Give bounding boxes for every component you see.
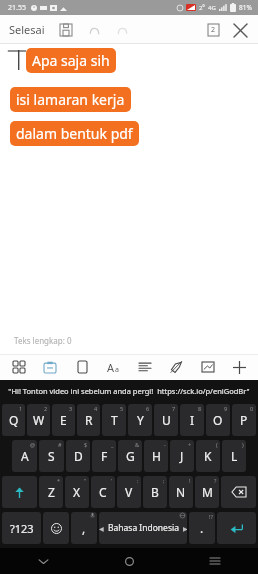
button[interactable] — [2, 476, 37, 508]
staticText: C — [99, 484, 107, 500]
staticText: 2 — [44, 405, 48, 412]
staticText: # — [58, 441, 62, 448]
staticText: & — [135, 441, 140, 448]
button[interactable]: Y — [128, 404, 152, 436]
staticText: , — [82, 520, 86, 536]
button[interactable]: G — [118, 440, 142, 472]
staticText: 6 — [146, 405, 150, 412]
button[interactable]: Selesai — [7, 18, 47, 41]
button[interactable]: Z — [39, 476, 63, 508]
staticText: " — [84, 477, 87, 484]
button[interactable]: . — [189, 512, 215, 544]
staticText: J — [180, 448, 184, 464]
staticText: 7 — [172, 405, 176, 412]
button[interactable]: B — [143, 476, 167, 508]
staticText: 5 — [120, 405, 124, 412]
button[interactable]: , — [71, 512, 97, 544]
button[interactable]: dalam bentuk pdf — [10, 121, 139, 146]
staticText: 8 — [198, 405, 202, 412]
staticText: ! — [189, 477, 191, 484]
button[interactable]: Image — [195, 354, 221, 380]
staticText: * — [57, 477, 61, 484]
button[interactable]: "Hi! Tonton video ini sebelum anda pergi… — [0, 380, 258, 402]
button[interactable]: Page — [69, 354, 95, 380]
button[interactable]: D — [66, 440, 90, 472]
button[interactable]: Grid — [6, 354, 32, 380]
staticText: 2⁹ — [199, 4, 205, 12]
button[interactable] — [43, 512, 69, 544]
button[interactable]: C — [91, 476, 115, 508]
staticText: X — [73, 484, 81, 500]
button[interactable]: Apa saja sih — [26, 48, 116, 73]
button[interactable]: Checklist — [37, 354, 63, 380]
staticText: E — [60, 412, 67, 428]
button[interactable]: N — [169, 476, 193, 508]
staticText: L — [231, 448, 238, 464]
button[interactable]: ?123 — [2, 512, 41, 544]
staticText: Y — [137, 412, 144, 428]
button[interactable]: S — [39, 440, 64, 472]
button[interactable]: X — [65, 476, 89, 508]
button[interactable]: isi lamaran kerja — [10, 87, 131, 112]
button[interactable]: Recents — [172, 548, 258, 574]
button[interactable] — [221, 476, 256, 508]
staticText: 3 — [69, 405, 73, 412]
button[interactable]: I — [180, 404, 204, 436]
staticText: Apa saja sih — [32, 51, 110, 70]
button[interactable]: Redo — [111, 19, 133, 41]
button[interactable]: Q — [2, 404, 25, 436]
staticText: 2 — [211, 25, 216, 35]
button[interactable]: L — [222, 440, 246, 472]
button[interactable]: Back — [0, 548, 86, 574]
button[interactable]: M — [195, 476, 219, 508]
staticText: Teks lengkap: 0 — [14, 335, 72, 346]
staticText: S — [48, 448, 55, 464]
staticText: 0 — [250, 405, 254, 412]
staticText: G — [126, 448, 135, 464]
button[interactable]: Undo — [83, 19, 105, 41]
button[interactable]: E — [52, 404, 75, 436]
button[interactable]: Add — [226, 354, 252, 380]
button[interactable]: U — [154, 404, 178, 436]
staticText: N — [176, 484, 186, 500]
staticText: . — [200, 520, 204, 536]
staticText: + — [188, 441, 192, 448]
button[interactable]: H — [144, 440, 168, 472]
staticText: ? — [214, 477, 217, 484]
staticText: "Hi! Tonton video ini sebelum anda pergi… — [8, 386, 250, 396]
staticText: 9 — [224, 405, 228, 412]
button[interactable]: F — [92, 440, 116, 472]
staticText: Bahasa Indonesia — [108, 522, 179, 534]
staticText: I — [190, 412, 195, 428]
button[interactable]: R — [77, 404, 100, 436]
button[interactable]: T — [102, 404, 126, 436]
button[interactable]: ◀ — [99, 512, 187, 544]
button[interactable]: W — [27, 404, 50, 436]
staticText: ?123 — [10, 521, 34, 536]
staticText: T — [111, 412, 118, 428]
button[interactable] — [217, 512, 256, 544]
staticText: ) — [242, 441, 244, 448]
button[interactable]: Save — [55, 19, 77, 41]
staticText: !? — [209, 513, 213, 520]
staticText: : — [137, 477, 139, 484]
button[interactable]: K — [196, 440, 220, 472]
button[interactable]: A — [12, 440, 37, 472]
staticText: isi lamaran kerja — [16, 90, 125, 109]
staticText: 4 — [94, 405, 98, 412]
button[interactable]: V — [117, 476, 141, 508]
button[interactable]: Align — [132, 354, 158, 380]
staticText: W — [33, 412, 45, 428]
button[interactable]: Home — [86, 548, 172, 574]
staticText: - — [164, 441, 166, 448]
staticText: ▶ — [183, 525, 187, 532]
button[interactable]: P — [232, 404, 256, 436]
staticText: Selesai — [9, 22, 45, 37]
button[interactable]: J — [170, 440, 194, 472]
staticText: A — [21, 448, 29, 464]
button[interactable]: Close — [229, 19, 251, 41]
button[interactable]: O — [206, 404, 230, 436]
button[interactable]: Pages — [203, 20, 223, 40]
button[interactable]: Text style — [100, 354, 126, 380]
button[interactable]: Highlighter — [163, 354, 189, 380]
